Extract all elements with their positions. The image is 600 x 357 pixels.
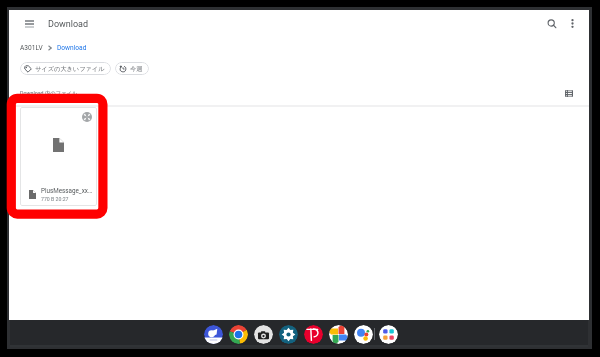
button[interactable]: Pay: [304, 325, 323, 344]
button[interactable]: Menu: [19, 14, 39, 34]
button[interactable]: Select file: [82, 112, 92, 122]
button[interactable]: Camera: [254, 325, 273, 344]
button[interactable]: Settings: [279, 325, 298, 344]
button[interactable]: Google Photos: [329, 325, 348, 344]
staticText: Download: [48, 19, 89, 30]
button[interactable]: Chrome: [229, 325, 248, 344]
button[interactable]: Select file: [20, 107, 97, 206]
button[interactable]: A301LV: [20, 44, 43, 52]
button[interactable]: Download: [57, 44, 87, 52]
button[interactable]: Launcher: [379, 325, 398, 344]
button[interactable]: Switch to list view: [560, 84, 578, 102]
button[interactable]: サイズの大きいファイル: [20, 62, 111, 75]
button[interactable]: Google Assistant: [354, 325, 373, 344]
staticText: PlusMessage_xx…: [41, 187, 93, 194]
button[interactable]: Classroom: [204, 325, 223, 344]
staticText: 今週: [130, 65, 143, 73]
staticText: Download 内のファイル: [20, 90, 78, 97]
button[interactable]: 今週: [115, 62, 149, 75]
button[interactable]: More options: [563, 14, 582, 33]
staticText: サイズの大きいファイル: [35, 65, 105, 73]
staticText: 770 B 20:27: [41, 196, 69, 202]
button[interactable]: Search: [542, 14, 561, 33]
